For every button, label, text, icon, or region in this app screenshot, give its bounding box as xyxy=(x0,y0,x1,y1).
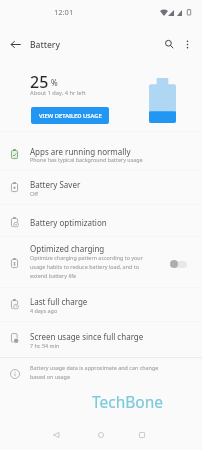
staticText: About 1 day, 4 hr left xyxy=(30,89,86,97)
button[interactable]: Battery Saver xyxy=(0,171,202,204)
staticText: Screen usage since full charge xyxy=(30,331,144,342)
staticText: Battery xyxy=(30,39,60,51)
staticText: 25 xyxy=(30,71,49,93)
button[interactable]: Back xyxy=(43,422,69,448)
staticText: 7 hr, 54 min xyxy=(30,342,190,349)
staticText: Optimized charging xyxy=(30,243,105,254)
staticText: Optimize charging pattern according to y… xyxy=(30,254,144,279)
button[interactable]: Recent apps xyxy=(129,422,155,448)
button[interactable]: Optimized charging xyxy=(0,237,202,287)
staticText: Phone has typical background battery usa… xyxy=(30,156,190,163)
button[interactable]: Screen usage since full charge xyxy=(0,322,202,357)
staticText: Battery usage data is approximate and ca… xyxy=(30,364,170,380)
button[interactable]: More options xyxy=(174,31,200,57)
staticText: TechBone xyxy=(92,391,164,412)
button[interactable]: Search xyxy=(156,31,182,57)
staticText: Apps are running normally xyxy=(30,146,131,157)
button[interactable]: VIEW DETAILED USAGE xyxy=(31,107,109,124)
staticText: Battery Saver xyxy=(30,179,81,190)
staticText: Last full charge xyxy=(30,296,88,307)
button[interactable]: Battery optimization xyxy=(0,205,202,236)
staticText: VIEW DETAILED USAGE xyxy=(39,112,102,120)
staticText: Battery optimization xyxy=(30,217,107,228)
staticText: 4 days ago xyxy=(30,307,190,314)
button[interactable]: Home xyxy=(88,422,114,448)
staticText: 12:01 xyxy=(54,7,74,17)
button[interactable]: Optimized charging toggle xyxy=(170,259,188,269)
staticText: Off xyxy=(30,190,190,197)
button[interactable]: Last full charge xyxy=(0,288,202,321)
staticText: % xyxy=(51,77,58,88)
button[interactable]: Back xyxy=(2,31,28,57)
button[interactable]: Apps are running normally xyxy=(0,132,202,170)
